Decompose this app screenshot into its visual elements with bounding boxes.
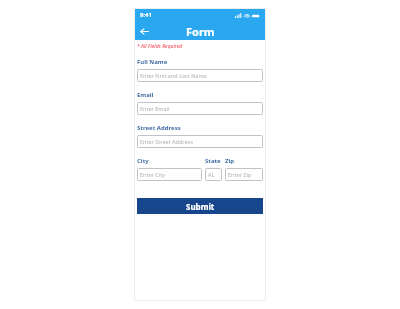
button[interactable]: Enter Email	[137, 102, 263, 115]
staticText: Enter Street Address	[140, 138, 193, 145]
button[interactable]: Enter Zip	[225, 168, 263, 181]
button[interactable]: AL	[205, 168, 222, 181]
staticText: Street Address	[137, 124, 181, 132]
staticText: Zip	[225, 157, 235, 165]
button[interactable]: Enter City	[137, 168, 202, 181]
staticText: 9:41	[140, 11, 152, 19]
button[interactable]: Submit	[137, 198, 263, 214]
staticText: Submit	[186, 201, 215, 212]
staticText: Form	[186, 24, 215, 39]
button[interactable]: Back	[137, 24, 151, 38]
staticText: Enter Email	[140, 105, 170, 112]
staticText: AL	[208, 171, 215, 178]
staticText: * All Fields Required	[137, 43, 183, 50]
staticText: City	[137, 157, 149, 165]
staticText: Enter City	[140, 171, 165, 178]
staticText: Enter Zip	[228, 171, 252, 178]
staticText: Full Name	[137, 58, 168, 66]
button[interactable]: Enter First and Last Name	[137, 69, 263, 82]
staticText: Email	[137, 91, 154, 99]
staticText: Enter First and Last Name	[140, 72, 207, 79]
button[interactable]: Enter Street Address	[137, 135, 263, 148]
staticText: State	[205, 157, 221, 165]
